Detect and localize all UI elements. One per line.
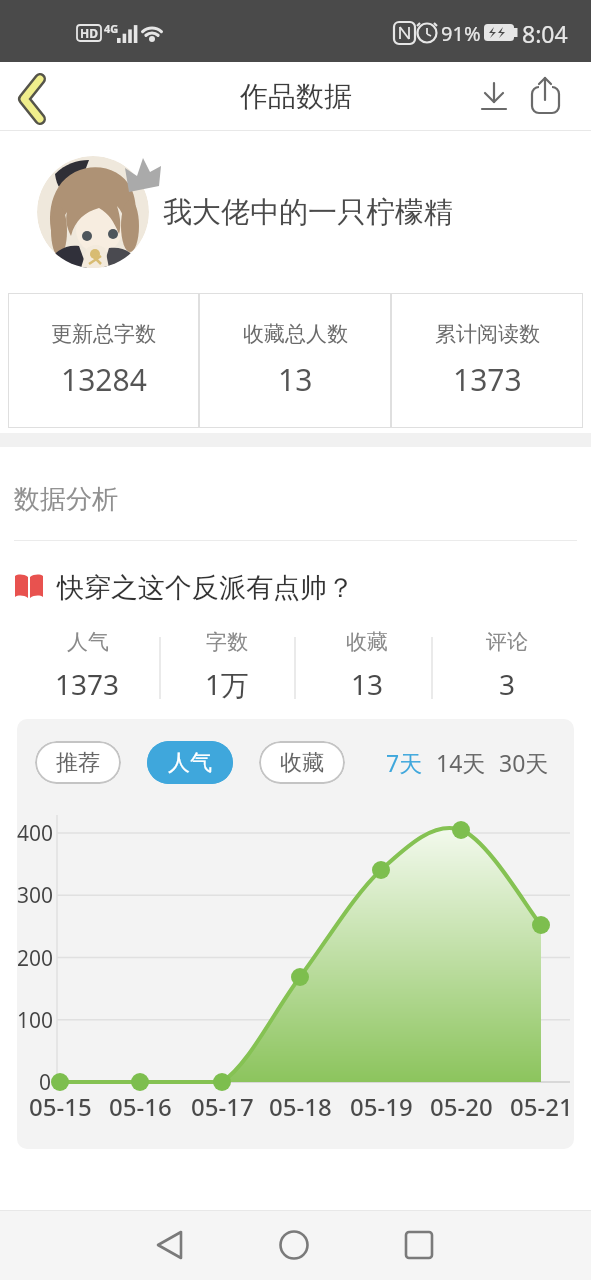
button[interactable] — [474, 76, 514, 116]
staticText: 200 — [17, 944, 52, 972]
staticText: 1万 — [205, 665, 250, 703]
staticText: 1373 — [55, 665, 120, 703]
button[interactable]: 更新总字数 — [8, 293, 199, 428]
staticText: 13 — [278, 359, 313, 400]
staticText: 400 — [17, 819, 52, 847]
staticText: 3 — [499, 665, 516, 703]
staticText: 我大佬中的一只柠檬精 — [163, 194, 453, 231]
staticText: 05-20 — [430, 1090, 493, 1123]
staticText: 人气 — [67, 629, 109, 655]
button[interactable]: 推荐 — [35, 741, 121, 784]
staticText: 收藏 — [346, 629, 388, 655]
staticText: 05-21 — [510, 1090, 573, 1123]
staticText: 1373 — [453, 359, 522, 400]
button[interactable]: 7天 — [386, 747, 423, 778]
staticText: 4G — [104, 21, 119, 36]
staticText: 数据分析 — [14, 483, 118, 516]
staticText: 100 — [17, 1006, 52, 1034]
staticText: 推荐 — [56, 749, 100, 777]
button[interactable]: 收藏 — [259, 741, 345, 784]
staticText: 05-17 — [191, 1090, 254, 1123]
button[interactable]: 人气 — [147, 741, 233, 784]
button[interactable]: 累计阅读数 — [391, 293, 583, 428]
staticText: 300 — [17, 881, 52, 909]
button[interactable]: 人气 — [18, 629, 157, 705]
staticText: 05-16 — [109, 1090, 172, 1123]
button[interactable] — [0, 65, 62, 127]
button[interactable]: 评论 — [437, 629, 577, 705]
button[interactable]: 收藏 — [297, 629, 437, 705]
staticText: 人气 — [168, 749, 212, 777]
button[interactable] — [524, 74, 568, 118]
staticText: 05-15 — [29, 1090, 92, 1123]
button[interactable] — [148, 1223, 192, 1267]
button[interactable]: 14天 — [436, 747, 486, 778]
button[interactable]: 收藏总人数 — [199, 293, 391, 428]
staticText: 评论 — [486, 629, 528, 655]
staticText: 收藏 — [280, 749, 324, 777]
staticText: HD — [80, 25, 98, 41]
staticText: 作品数据 — [240, 79, 352, 114]
staticText: 快穿之这个反派有点帅？ — [57, 571, 354, 605]
staticText: 0 — [39, 1068, 52, 1096]
button[interactable]: 字数 — [157, 629, 297, 705]
staticText: 05-19 — [350, 1090, 413, 1123]
button[interactable] — [397, 1223, 441, 1267]
staticText: 累计阅读数 — [435, 321, 540, 347]
staticText: 字数 — [206, 629, 248, 655]
staticText: 更新总字数 — [51, 321, 156, 347]
staticText: 8:04 — [522, 18, 568, 49]
staticText: 91% — [441, 20, 481, 47]
staticText: 13284 — [61, 359, 147, 400]
staticText: 收藏总人数 — [243, 321, 348, 347]
button[interactable]: 快穿之这个反派有点帅？ — [14, 571, 591, 605]
staticText: 13 — [351, 665, 384, 703]
staticText: 05-18 — [269, 1090, 332, 1123]
button[interactable] — [272, 1223, 316, 1267]
button[interactable]: 30天 — [499, 747, 549, 778]
